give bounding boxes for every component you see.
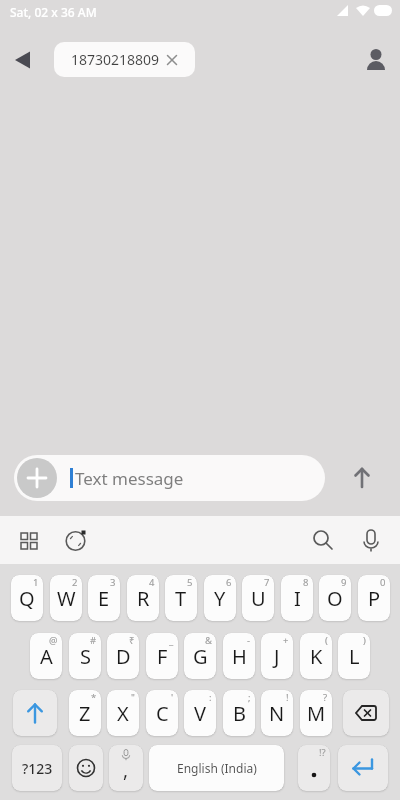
button[interactable]: T (165, 575, 197, 621)
staticText: + (283, 634, 289, 647)
button[interactable] (17, 458, 57, 498)
button[interactable]: S (69, 633, 101, 679)
button[interactable]: O (319, 575, 351, 621)
staticText: ? (323, 691, 328, 704)
staticText: K (310, 643, 323, 670)
staticText: Sat, 02 x 36 AM (10, 4, 97, 20)
button[interactable]: V (184, 690, 216, 736)
staticText: I (294, 585, 301, 612)
button[interactable] (338, 745, 388, 791)
staticText: @ (49, 634, 58, 647)
staticText: X (117, 700, 129, 727)
button[interactable] (60, 525, 92, 557)
button[interactable]: G (184, 633, 216, 679)
staticText: , (123, 757, 129, 783)
button[interactable]: , (109, 745, 143, 791)
staticText: - (247, 634, 251, 647)
staticText: 7 (264, 576, 270, 589)
button[interactable] (13, 525, 45, 557)
staticText: R (137, 585, 150, 612)
staticText: ?123 (22, 759, 53, 778)
button[interactable]: U (242, 575, 274, 621)
staticText: Text message (75, 467, 184, 490)
button[interactable]: P (358, 575, 390, 621)
button[interactable]: C (146, 690, 178, 736)
button[interactable]: A (30, 633, 62, 679)
staticText: M (307, 700, 326, 727)
staticText: ' (171, 691, 174, 704)
button[interactable]: Q (11, 575, 43, 621)
staticText: _ (169, 634, 174, 647)
button[interactable] (355, 524, 387, 556)
staticText: Y (214, 585, 226, 612)
button[interactable] (8, 44, 40, 76)
staticText: T (175, 585, 187, 612)
staticText: L (349, 643, 360, 670)
staticText: S (80, 643, 91, 670)
button[interactable]: I (281, 575, 313, 621)
staticText: C (156, 700, 169, 727)
button[interactable]: ?123 (12, 745, 62, 791)
button[interactable]: English (India) (149, 745, 284, 791)
staticText: * (91, 691, 97, 704)
staticText: F (157, 643, 168, 670)
staticText: English (India) (177, 760, 257, 776)
button[interactable] (343, 690, 389, 736)
button[interactable]: D (107, 633, 139, 679)
button[interactable]: F (146, 633, 178, 679)
button[interactable]: M (300, 690, 332, 736)
staticText: B (233, 700, 246, 727)
staticText: H (232, 643, 247, 670)
staticText: ! (286, 691, 289, 704)
staticText: ( (325, 634, 328, 647)
staticText: 3 (110, 576, 116, 589)
staticText: 1 (33, 576, 39, 589)
button[interactable]: W (50, 575, 82, 621)
button[interactable]: N (261, 690, 293, 736)
staticText: Q (19, 585, 35, 612)
button[interactable]: J (261, 633, 293, 679)
staticText: # (90, 634, 97, 647)
button[interactable]: Y (204, 575, 236, 621)
staticText: G (193, 643, 208, 670)
staticText: E (98, 585, 110, 612)
staticText: 2 (72, 576, 78, 589)
staticText: ; (248, 691, 251, 704)
staticText: ₹ (129, 634, 135, 647)
button[interactable]: B (223, 690, 255, 736)
staticText: 9 (341, 576, 347, 589)
staticText: " (131, 691, 135, 704)
staticText: 8 (303, 576, 309, 589)
button[interactable] (360, 44, 392, 76)
button[interactable] (346, 462, 378, 494)
button[interactable] (13, 690, 57, 736)
staticText: W (57, 585, 76, 612)
button[interactable]: E (88, 575, 120, 621)
staticText: P (368, 585, 381, 612)
button[interactable]: L (338, 633, 370, 679)
staticText: O (327, 585, 343, 612)
button[interactable]: R (127, 575, 159, 621)
button[interactable]: H (223, 633, 255, 679)
button[interactable] (306, 524, 338, 556)
button[interactable]: 18730218809 (54, 42, 195, 77)
staticText: N (269, 700, 285, 727)
staticText: : (209, 691, 212, 704)
button[interactable]: !? (298, 745, 330, 791)
staticText: ) (363, 634, 366, 647)
staticText: 0 (380, 576, 386, 589)
staticText: !? (319, 746, 326, 759)
staticText: A (40, 643, 53, 670)
button[interactable]: Z (69, 690, 101, 736)
staticText: 5 (187, 576, 193, 589)
staticText: J (274, 643, 280, 670)
staticText: V (194, 700, 206, 727)
button[interactable]: K (300, 633, 332, 679)
staticText: Z (79, 700, 91, 727)
button[interactable] (69, 745, 103, 791)
staticText: & (205, 634, 212, 647)
staticText: 6 (226, 576, 232, 589)
button[interactable]: X (107, 690, 139, 736)
button[interactable]: Text message (14, 455, 325, 501)
staticText: D (116, 643, 131, 670)
